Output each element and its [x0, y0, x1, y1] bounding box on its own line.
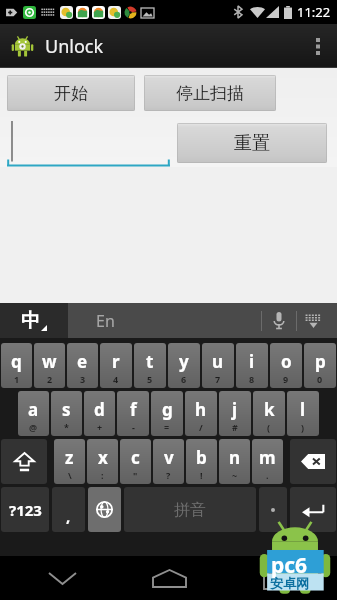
- staticText: 2: [47, 373, 53, 385]
- staticText: m: [259, 446, 276, 469]
- button[interactable]: a: [18, 391, 49, 436]
- staticText: En: [96, 310, 115, 332]
- staticText: 开始: [54, 83, 88, 104]
- button[interactable]: v: [153, 439, 184, 484]
- button[interactable]: i: [236, 343, 268, 388]
- button[interactable]: Recent apps: [230, 556, 320, 600]
- staticText: @: [29, 421, 38, 433]
- staticText: d: [94, 398, 105, 421]
- button[interactable]: ?123: [1, 487, 49, 532]
- button[interactable]: c: [120, 439, 151, 484]
- button[interactable]: g: [151, 391, 183, 436]
- button[interactable]: u: [202, 343, 234, 388]
- staticText: x: [98, 446, 108, 469]
- button[interactable]: Settings: [259, 487, 287, 532]
- staticText: h: [195, 398, 207, 421]
- staticText: ~: [232, 469, 238, 481]
- staticText: 0: [317, 373, 323, 385]
- staticText: #: [232, 421, 238, 433]
- staticText: g: [162, 398, 173, 421]
- staticText: 8: [249, 373, 255, 385]
- staticText: 4: [113, 373, 119, 385]
- button[interactable]: Back: [17, 556, 107, 600]
- staticText: :: [101, 469, 104, 481]
- button[interactable]: [7, 119, 170, 167]
- staticText: e: [77, 350, 88, 373]
- staticText: pc6: [271, 551, 308, 580]
- staticText: f: [130, 398, 137, 421]
- button[interactable]: r: [100, 343, 132, 388]
- button[interactable]: 重置: [177, 123, 327, 163]
- staticText: 11:22: [297, 3, 331, 21]
- button[interactable]: Enter: [290, 487, 336, 532]
- staticText: 拼音: [174, 500, 206, 520]
- button[interactable]: q: [1, 343, 32, 388]
- staticText: 7: [215, 373, 221, 385]
- staticText: 1: [14, 373, 20, 385]
- button[interactable]: y: [168, 343, 200, 388]
- staticText: 停止扫描: [176, 83, 244, 104]
- staticText: y: [179, 350, 189, 373]
- button[interactable]: Shift: [1, 439, 47, 484]
- staticText: 重置: [234, 132, 270, 155]
- staticText: q: [11, 350, 22, 373]
- button[interactable]: Voice input: [262, 303, 296, 338]
- staticText: 安卓网: [270, 575, 309, 591]
- staticText: .: [266, 469, 269, 481]
- staticText: b: [196, 446, 207, 469]
- staticText: 9: [283, 373, 289, 385]
- button[interactable]: w: [34, 343, 65, 388]
- staticText: /: [199, 421, 203, 433]
- button[interactable]: s: [51, 391, 82, 436]
- staticText: *: [64, 421, 69, 433]
- button[interactable]: d: [84, 391, 115, 436]
- button[interactable]: b: [186, 439, 217, 484]
- staticText: a: [28, 398, 39, 421]
- button[interactable]: 停止扫描: [144, 75, 276, 111]
- button[interactable]: h: [185, 391, 217, 436]
- button[interactable]: t: [134, 343, 166, 388]
- button[interactable]: 开始: [7, 75, 135, 111]
- staticText: o: [281, 350, 292, 373]
- staticText: s: [62, 398, 71, 421]
- staticText: ": [133, 469, 138, 481]
- button[interactable]: z: [54, 439, 85, 484]
- staticText: v: [164, 446, 174, 469]
- staticText: i: [249, 350, 255, 373]
- button[interactable]: Delete: [290, 439, 336, 484]
- staticText: u: [212, 350, 224, 373]
- staticText: z: [65, 446, 74, 469]
- button[interactable]: f: [117, 391, 149, 436]
- staticText: j: [232, 398, 238, 421]
- button[interactable]: 拼音: [124, 487, 256, 532]
- staticText: l: [300, 398, 306, 421]
- button[interactable]: j: [219, 391, 251, 436]
- staticText: r: [112, 350, 120, 373]
- button[interactable]: l: [287, 391, 319, 436]
- staticText: c: [131, 446, 140, 469]
- button[interactable]: e: [67, 343, 98, 388]
- button[interactable]: n: [219, 439, 250, 484]
- button[interactable]: o: [270, 343, 302, 388]
- button[interactable]: x: [87, 439, 118, 484]
- staticText: ): [301, 421, 305, 433]
- button[interactable]: Change language: [88, 487, 121, 532]
- staticText: ?123: [9, 500, 42, 520]
- staticText: \: [68, 469, 72, 481]
- staticText: +: [97, 421, 103, 433]
- button[interactable]: k: [253, 391, 285, 436]
- button[interactable]: Hide keyboard: [297, 303, 329, 338]
- staticText: =: [164, 421, 170, 433]
- button[interactable]: Home: [124, 556, 214, 600]
- staticText: ?: [166, 469, 171, 481]
- staticText: ,: [66, 506, 71, 526]
- button[interactable]: p: [304, 343, 336, 388]
- staticText: 6: [181, 373, 187, 385]
- staticText: Unlock: [45, 34, 104, 59]
- button[interactable]: m: [252, 439, 283, 484]
- button[interactable]: More options: [299, 24, 337, 68]
- staticText: 中: [21, 309, 40, 333]
- button[interactable]: 中: [0, 303, 68, 338]
- button[interactable]: ,: [52, 487, 85, 532]
- staticText: 5: [147, 373, 153, 385]
